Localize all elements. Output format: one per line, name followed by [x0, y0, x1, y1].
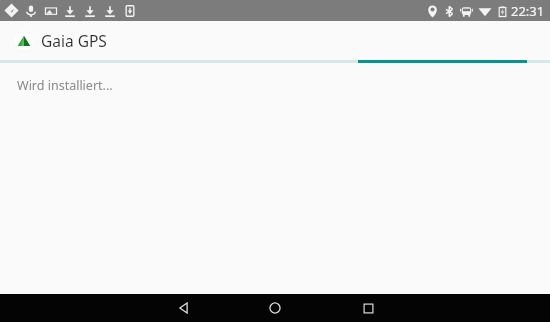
button[interactable]: Gaia GPS: [0, 21, 550, 60]
staticText: 22:31: [511, 2, 545, 20]
button[interactable]: Home: [253, 294, 297, 322]
staticText: Wird installiert...: [17, 77, 113, 94]
button[interactable]: Back: [162, 294, 206, 322]
staticText: Gaia GPS: [41, 30, 107, 51]
button[interactable]: Recent apps: [346, 294, 390, 322]
